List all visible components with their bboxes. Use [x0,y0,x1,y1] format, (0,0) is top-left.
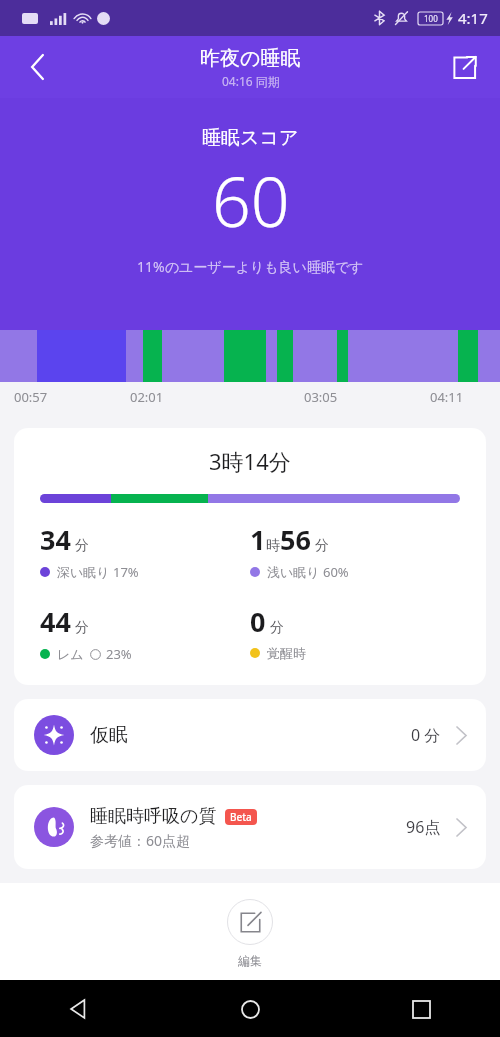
staticText: 02:01 [130,388,164,406]
button[interactable]: Home [229,988,271,1030]
staticText: 参考値：60点超 [90,831,191,850]
button[interactable]: Share [441,44,487,90]
staticText: 56 [280,521,311,558]
staticText: 昨夜の睡眠 [200,46,301,71]
staticText: 03:05 [304,388,338,406]
button[interactable]: 3時14分 [14,428,486,685]
staticText: 4:17 [458,8,488,28]
staticText: 分 [270,619,284,637]
staticText: 34 [40,521,71,558]
staticText: 04:11 [430,388,464,406]
button[interactable]: 仮眠 [14,699,486,771]
staticText: 04:16 同期 [222,73,280,89]
staticText: 浅い眠り 60% [267,563,349,581]
button[interactable]: 睡眠時呼吸の質 [14,785,486,869]
staticText: 時 [266,537,280,555]
staticText: 0 [250,603,266,640]
staticText: 睡眠時呼吸の質 [90,805,217,828]
staticText: 60 [212,154,290,247]
staticText: 分 [75,537,89,555]
staticText: レム [57,646,84,662]
staticText: 11%のユーザーよりも良い睡眠です [137,257,364,276]
staticText: Beta [230,810,252,824]
staticText: 編集 [238,953,262,968]
staticText: 44 [40,603,71,640]
button[interactable]: 編集 [227,899,273,968]
button[interactable]: Recents [400,988,442,1030]
staticText: 1 [250,521,266,558]
staticText: 23% [106,645,132,663]
staticText: 0 分 [411,724,441,746]
staticText: 分 [75,619,89,637]
staticText: 100 [424,13,438,24]
staticText: 00:57 [14,388,48,406]
button[interactable]: Back [15,44,61,90]
staticText: 96点 [406,816,441,838]
staticText: 睡眠スコア [202,126,299,150]
staticText: 深い眠り 17% [57,563,139,581]
staticText: 分 [315,537,329,555]
staticText: 3時14分 [209,446,291,476]
staticText: 仮眠 [90,723,128,747]
button[interactable]: Back [58,988,100,1030]
staticText: 覚醒時 [267,645,306,661]
